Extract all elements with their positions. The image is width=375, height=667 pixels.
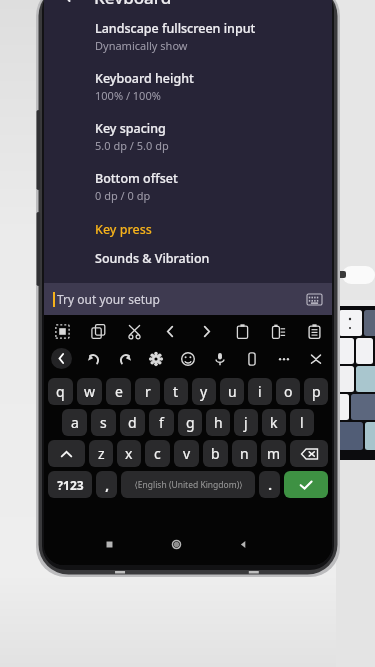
staticText: Try out your setup bbox=[57, 291, 160, 307]
button[interactable]: d bbox=[120, 409, 145, 436]
button[interactable]: Sounds & Vibration bbox=[44, 242, 332, 276]
staticText: j bbox=[244, 413, 248, 432]
staticText: g bbox=[186, 413, 195, 432]
button[interactable]: Copy bbox=[80, 318, 116, 345]
button[interactable]: a bbox=[62, 409, 87, 436]
staticText: x bbox=[125, 444, 133, 463]
button[interactable]: t bbox=[164, 378, 188, 405]
button[interactable]: h bbox=[206, 409, 230, 436]
button[interactable]: r bbox=[135, 378, 160, 405]
button[interactable]: z bbox=[89, 440, 113, 467]
staticText: , bbox=[105, 476, 109, 494]
staticText: 0 dp / 0 dp bbox=[95, 188, 151, 203]
staticText: a bbox=[71, 413, 79, 432]
button[interactable]: Undo bbox=[78, 345, 109, 372]
staticText: p bbox=[312, 382, 321, 401]
button[interactable]: w bbox=[77, 378, 102, 405]
button[interactable]: Clipboard history bbox=[260, 318, 296, 345]
button[interactable]: Redo bbox=[109, 345, 140, 372]
button[interactable]: m bbox=[261, 440, 286, 467]
button[interactable]: Voice input bbox=[204, 345, 236, 372]
button[interactable]: Keyboard height bbox=[44, 62, 332, 112]
staticText: t bbox=[173, 382, 179, 401]
staticText: u bbox=[228, 382, 237, 401]
staticText: c bbox=[154, 444, 161, 463]
button[interactable]: i bbox=[248, 378, 272, 405]
button[interactable]: Recents bbox=[96, 531, 122, 557]
button[interactable]: Select all bbox=[44, 318, 80, 345]
button[interactable]: Bottom offset bbox=[44, 162, 332, 212]
button[interactable]: l bbox=[290, 409, 314, 436]
button[interactable]: Clipboard bbox=[296, 318, 332, 345]
button[interactable]: ?123 bbox=[48, 471, 92, 498]
button[interactable]: Close toolbar bbox=[51, 348, 72, 369]
staticText: f bbox=[159, 413, 164, 432]
staticText: w bbox=[84, 382, 96, 401]
button[interactable]: n bbox=[232, 440, 257, 467]
staticText: l bbox=[300, 413, 304, 432]
button[interactable]: ⟨English (United Kingdom)⟩ bbox=[121, 471, 255, 498]
button[interactable]: . bbox=[259, 471, 280, 498]
button[interactable]: Try out your setup bbox=[44, 283, 332, 315]
staticText: q bbox=[56, 382, 65, 401]
button[interactable]: c bbox=[145, 440, 170, 467]
button[interactable]: f bbox=[149, 409, 174, 436]
button[interactable]: k bbox=[262, 409, 286, 436]
button[interactable]: y bbox=[192, 378, 216, 405]
staticText: . bbox=[268, 476, 272, 494]
staticText: r bbox=[145, 382, 151, 401]
button[interactable]: Settings bbox=[140, 345, 172, 372]
staticText: s bbox=[100, 413, 107, 432]
staticText: h bbox=[214, 413, 223, 432]
staticText: ?123 bbox=[57, 477, 84, 493]
staticText: b bbox=[211, 444, 220, 463]
staticText: k bbox=[270, 413, 278, 432]
button[interactable]: o bbox=[276, 378, 300, 405]
staticText: m bbox=[267, 444, 281, 463]
button[interactable]: x bbox=[117, 440, 141, 467]
staticText: d bbox=[128, 413, 137, 432]
button[interactable]: v bbox=[174, 440, 199, 467]
button[interactable]: Emoji bbox=[172, 345, 204, 372]
button[interactable]: More bbox=[268, 345, 300, 372]
button[interactable]: One handed mode bbox=[236, 345, 268, 372]
staticText: Keyboard height bbox=[95, 70, 194, 87]
button[interactable]: , bbox=[96, 471, 117, 498]
button[interactable]: Backspace bbox=[290, 440, 328, 467]
button[interactable]: Switch keyboard bbox=[305, 290, 323, 308]
staticText: z bbox=[98, 444, 105, 463]
button[interactable]: b bbox=[203, 440, 228, 467]
button[interactable]: Enter bbox=[284, 471, 328, 498]
staticText: v bbox=[183, 444, 191, 463]
button[interactable]: Shift bbox=[48, 440, 85, 467]
button[interactable]: Move right bbox=[188, 318, 224, 345]
staticText: ⟨English (United Kingdom)⟩ bbox=[134, 479, 243, 491]
staticText: Bottom offset bbox=[95, 170, 178, 187]
button[interactable]: s bbox=[91, 409, 116, 436]
button[interactable]: Landscape fullscreen input bbox=[44, 12, 332, 62]
staticText: y bbox=[200, 382, 208, 401]
button[interactable]: p bbox=[304, 378, 328, 405]
button[interactable]: Paste bbox=[224, 318, 260, 345]
button[interactable]: u bbox=[220, 378, 244, 405]
button[interactable]: Move left bbox=[152, 318, 188, 345]
button[interactable]: j bbox=[234, 409, 258, 436]
staticText: i bbox=[258, 382, 262, 401]
button[interactable]: q bbox=[48, 378, 73, 405]
button[interactable]: Cut bbox=[116, 318, 152, 345]
staticText: Keyboard bbox=[94, 0, 172, 4]
button[interactable]: Back bbox=[230, 531, 256, 557]
button[interactable]: Home bbox=[163, 531, 189, 557]
staticText: Dynamically show bbox=[95, 38, 188, 53]
button[interactable]: Key spacing bbox=[44, 112, 332, 162]
staticText: n bbox=[240, 444, 249, 463]
staticText: e bbox=[115, 382, 123, 401]
staticText: o bbox=[284, 382, 293, 401]
button[interactable]: Back bbox=[54, 0, 80, 4]
button[interactable]: g bbox=[178, 409, 202, 436]
button[interactable]: Collapse bbox=[300, 345, 332, 372]
staticText: Landscape fullscreen input bbox=[95, 20, 256, 37]
staticText: Key press bbox=[95, 221, 152, 238]
staticText: Sounds & Vibration bbox=[95, 250, 210, 267]
button[interactable]: e bbox=[106, 378, 131, 405]
